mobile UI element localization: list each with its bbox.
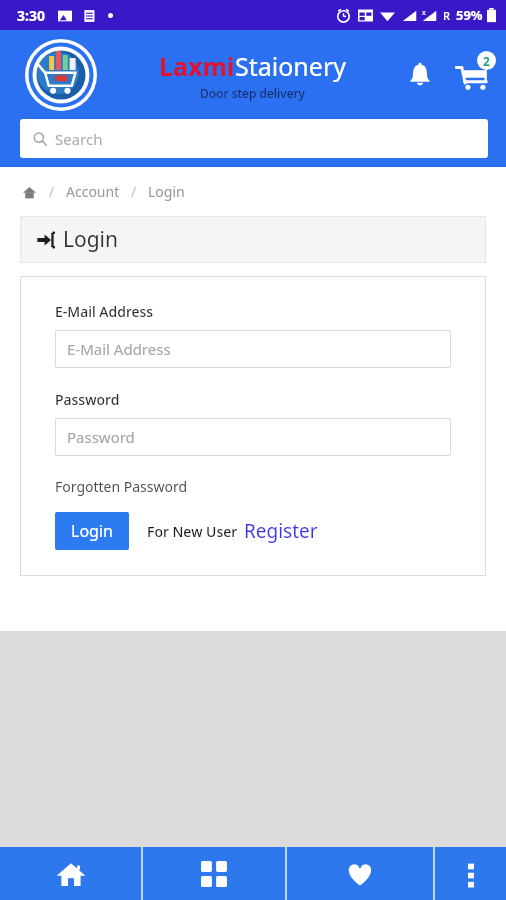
staticText: R — [443, 8, 450, 23]
button[interactable]: Home — [0, 847, 141, 900]
staticText: / — [49, 182, 55, 201]
button[interactable]: More options — [435, 847, 506, 900]
staticText: Password — [67, 427, 135, 447]
button[interactable]: Categories — [143, 847, 285, 900]
staticText: Door step delivery — [200, 85, 305, 101]
staticText: E-Mail Address — [67, 339, 171, 359]
staticText: / — [131, 182, 137, 201]
button[interactable]: Password — [55, 418, 451, 456]
button[interactable]: E-Mail Address — [55, 330, 451, 368]
staticText: Login — [63, 225, 119, 254]
button[interactable]: Cart, 2 items — [446, 49, 498, 101]
button[interactable]: Account — [66, 182, 120, 201]
button[interactable]: Wishlist — [287, 847, 433, 900]
staticText: Password — [55, 390, 120, 409]
staticText: Login — [71, 520, 113, 542]
staticText: x — [422, 8, 426, 18]
staticText: Register — [244, 518, 318, 544]
staticText: Staionery — [235, 49, 346, 83]
button[interactable]: Search — [20, 119, 488, 158]
button[interactable]: Forgotten Password — [55, 477, 188, 496]
staticText: E-Mail Address — [55, 302, 154, 321]
staticText: 59% — [456, 6, 483, 24]
staticText: Login — [148, 182, 185, 201]
button[interactable]: Login — [55, 512, 129, 550]
staticText: Search — [55, 129, 103, 149]
button[interactable]: Notifications — [398, 53, 442, 97]
staticText: 2 — [483, 53, 490, 69]
staticText: Forgotten Password — [55, 477, 188, 496]
staticText: For New User — [147, 522, 238, 541]
staticText: Account — [66, 182, 120, 201]
button[interactable]: Register — [244, 518, 318, 544]
button[interactable]: Laxmi Staionery home — [25, 39, 97, 111]
staticText: 3:30 — [17, 6, 45, 25]
button[interactable]: Home — [20, 183, 38, 201]
staticText: Laxmi — [159, 49, 235, 83]
